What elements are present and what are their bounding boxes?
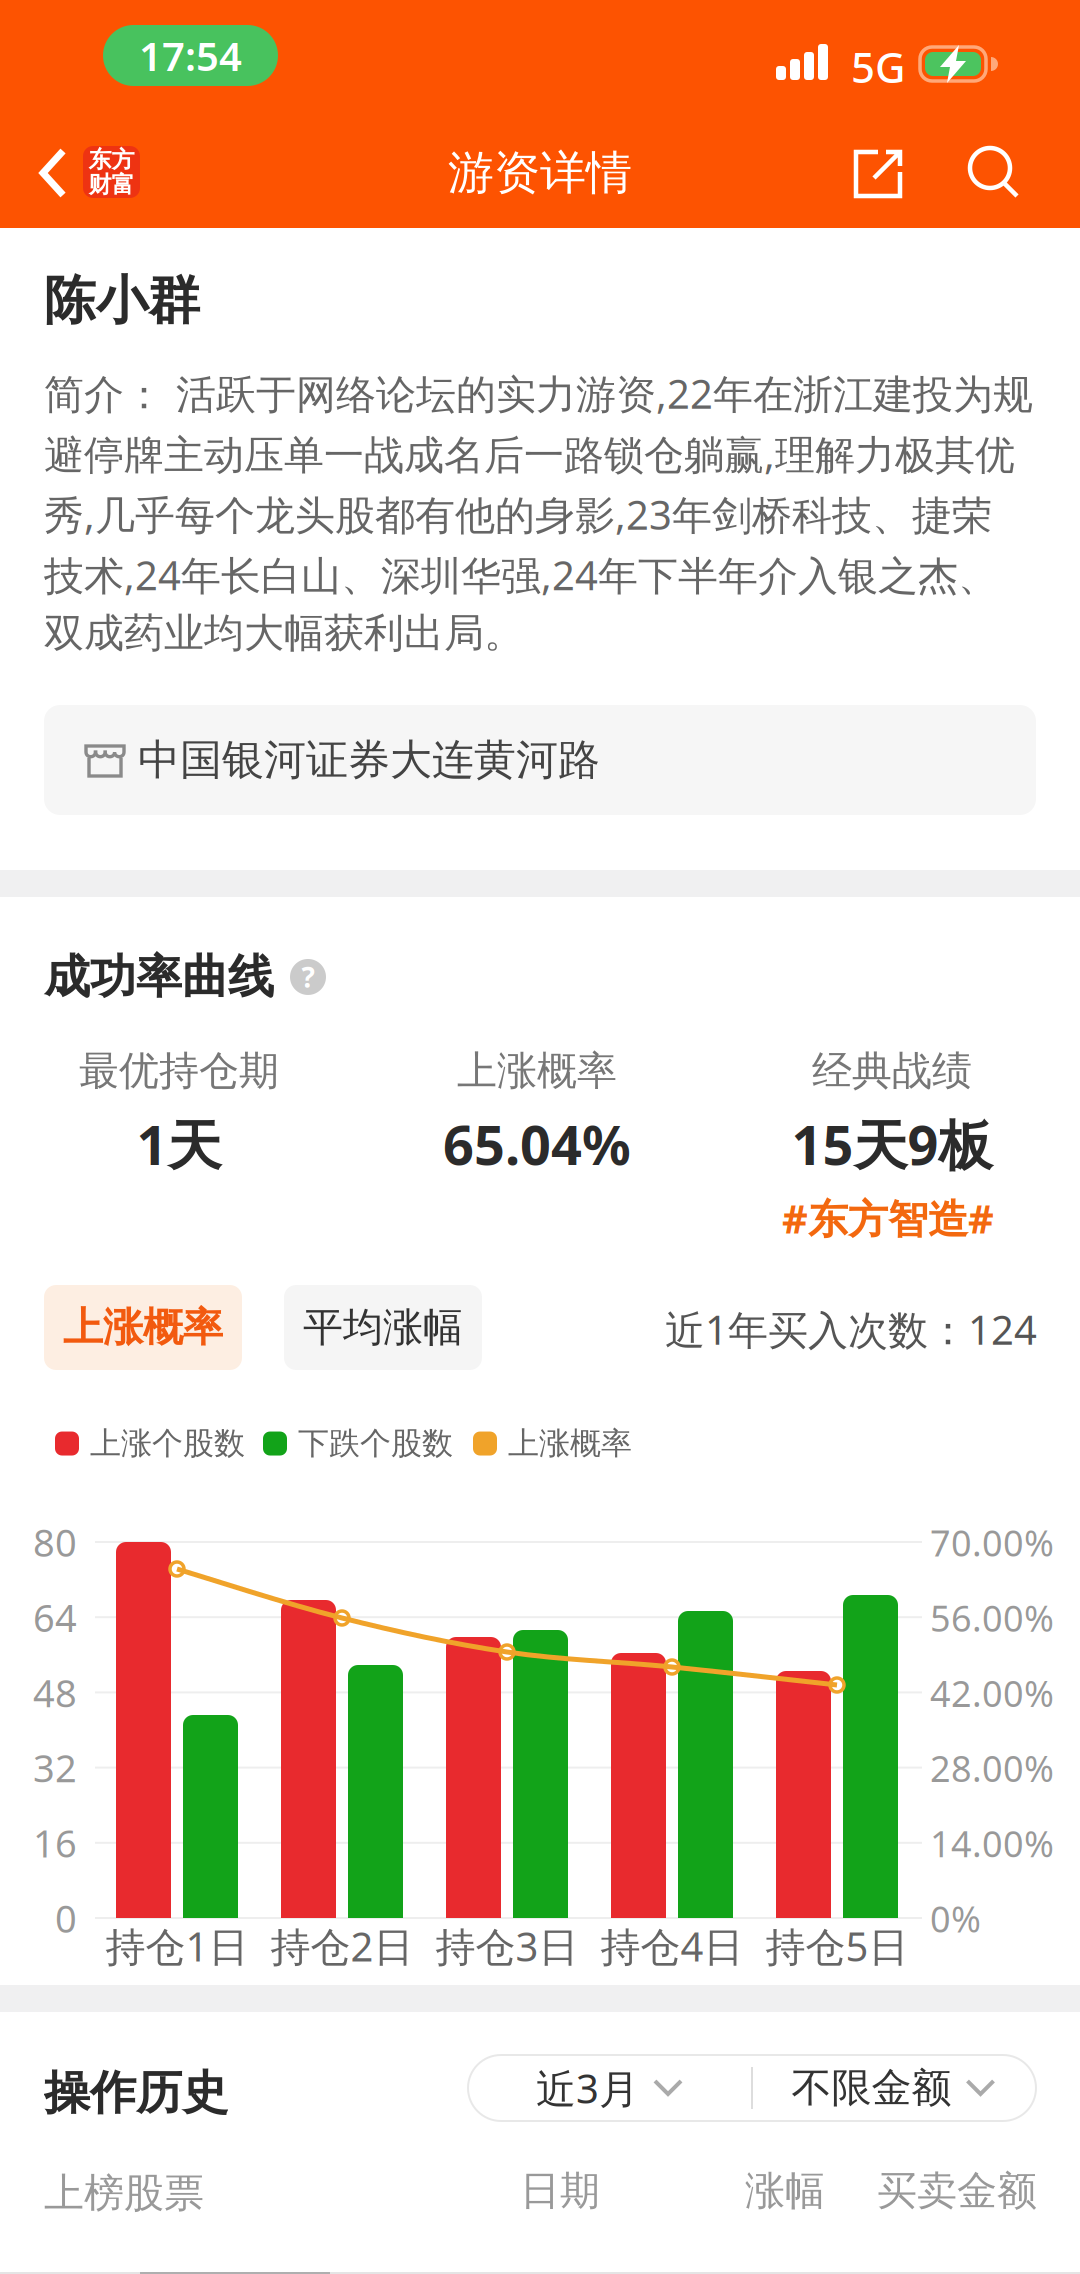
staticText: 64 (33, 1591, 77, 1643)
staticText: 秀,几乎每个龙头股都有他的身影,23年剑桥科技、捷荣 (44, 487, 992, 541)
staticText: 持仓4日 (600, 1919, 743, 1973)
staticText: 双成药业均大幅获利出局。 (44, 608, 524, 658)
staticText: 操作历史 (44, 2064, 228, 2122)
button[interactable]: 分享 (854, 150, 902, 198)
staticText: 1天 (136, 1107, 221, 1181)
staticText: 15天9板 (791, 1107, 992, 1181)
staticText: 65.04% (443, 1107, 631, 1181)
staticText: 上榜股票 (44, 2168, 204, 2218)
staticText: 70.00% (930, 1518, 1054, 1567)
button[interactable]: 搜索 (968, 148, 1020, 198)
staticText: 不限金额 (791, 2063, 951, 2113)
button[interactable]: 东方财富 (83, 146, 140, 198)
staticText: 上涨概率 (508, 1424, 632, 1463)
staticText: 成功率曲线 (44, 948, 274, 1006)
staticText: 持仓1日 (105, 1919, 248, 1973)
staticText: 42.00% (930, 1668, 1054, 1717)
staticText: 持仓5日 (765, 1919, 908, 1973)
staticText: 下跌个股数 (298, 1424, 453, 1463)
button[interactable]: 上涨概率 (44, 1285, 242, 1370)
staticText: 简介： 活跃于网络论坛的实力游资,22年在浙江建投为规 (44, 366, 1033, 420)
staticText: 近3月 (536, 2061, 639, 2115)
staticText: 上涨概率 (457, 1046, 617, 1096)
staticText: 上涨概率 (63, 1302, 223, 1353)
staticText: 近1年买入次数：124 (665, 1302, 1037, 1356)
staticText: 中国银河证券大连黄河路 (138, 733, 600, 786)
button[interactable]: 说明 (290, 959, 326, 995)
staticText: 14.00% (930, 1819, 1054, 1868)
staticText: 最优持仓期 (79, 1046, 279, 1096)
staticText: 0 (55, 1892, 77, 1944)
staticText: 17:54 (139, 28, 242, 83)
staticText: 持仓3日 (435, 1919, 578, 1973)
staticText: 80 (33, 1516, 77, 1568)
staticText: 16 (33, 1817, 77, 1869)
button[interactable]: 平均涨幅 (284, 1285, 482, 1370)
button[interactable]: 返回 (38, 147, 68, 199)
staticText: 技术,24年长白山、深圳华强,24年下半年介入银之杰、 (44, 547, 998, 602)
button[interactable]: 不限金额 (751, 2055, 1036, 2121)
staticText: 陈小群 (44, 268, 200, 333)
staticText: 平均涨幅 (303, 1302, 463, 1353)
staticText: 32 (33, 1742, 77, 1793)
button[interactable]: 中国银河证券大连黄河路 (44, 705, 1036, 815)
staticText: 买卖金额 (877, 2166, 1037, 2216)
staticText: 经典战绩 (812, 1046, 972, 1096)
staticText: 28.00% (930, 1744, 1054, 1793)
staticText: 5G (851, 38, 906, 95)
staticText: 持仓2日 (270, 1919, 413, 1973)
staticText: 涨幅 (745, 2166, 825, 2216)
staticText: 日期 (520, 2166, 600, 2216)
staticText: #东方智造# (782, 1191, 994, 1245)
staticText: 56.00% (930, 1593, 1054, 1642)
staticText: 东方 (88, 145, 134, 174)
staticText: 避停牌主动压单一战成名后一路锁仓躺赢,理解力极其优 (44, 426, 1015, 481)
staticText: 0% (930, 1894, 981, 1943)
button[interactable]: 近3月 (468, 2055, 751, 2121)
staticText: 上涨个股数 (90, 1424, 245, 1463)
staticText: 48 (33, 1666, 77, 1718)
staticText: 游资详情 (448, 144, 632, 202)
staticText: 财富 (88, 170, 134, 199)
staticText: ? (301, 958, 314, 996)
